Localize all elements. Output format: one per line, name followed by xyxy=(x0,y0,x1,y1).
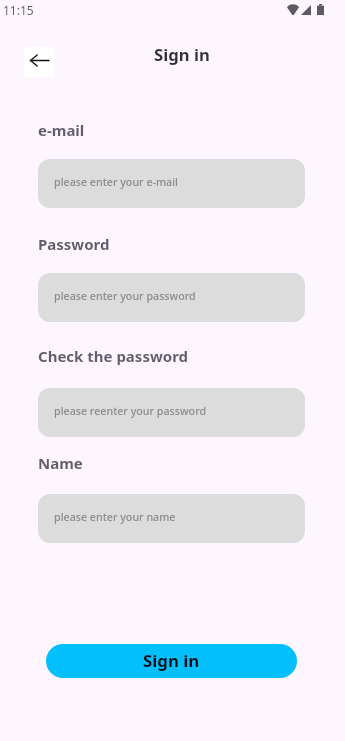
button[interactable]: please enter your name xyxy=(38,494,305,543)
staticText: Sign in xyxy=(154,43,210,66)
staticText: please enter your e-mail xyxy=(54,175,178,190)
other: Wi-Fi xyxy=(287,4,299,15)
button[interactable]: Sign in xyxy=(46,644,297,678)
staticText: Sign in xyxy=(143,649,200,672)
button[interactable]: Back xyxy=(24,47,54,77)
staticText: please enter your password xyxy=(54,289,196,304)
staticText: please reenter your password xyxy=(54,404,207,419)
button[interactable]: please reenter your password xyxy=(38,388,305,437)
staticText: 11:15 xyxy=(3,2,34,18)
staticText: Name xyxy=(38,453,83,473)
other: Signal xyxy=(301,5,311,15)
staticText: Password xyxy=(38,234,110,254)
button[interactable]: please enter your e-mail xyxy=(38,159,305,208)
button[interactable]: please enter your password xyxy=(38,273,305,322)
staticText: please enter your name xyxy=(54,510,176,525)
staticText: e-mail xyxy=(38,120,85,140)
staticText: Check the password xyxy=(38,346,189,366)
other: Battery xyxy=(317,4,324,16)
